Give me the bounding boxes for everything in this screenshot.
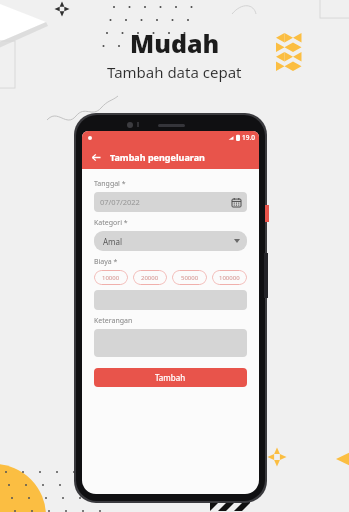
staticText: Tanggal * bbox=[94, 179, 126, 189]
button[interactable]: 100000 bbox=[212, 270, 247, 285]
staticText: Tambah data cepat bbox=[107, 62, 242, 82]
other: Pick date bbox=[232, 198, 241, 207]
button[interactable]: 50000 bbox=[172, 270, 207, 285]
staticText: 50000 bbox=[181, 274, 199, 282]
staticText: 10000 bbox=[102, 274, 120, 282]
staticText: Kategori * bbox=[94, 218, 128, 228]
button[interactable]: 07/07/2022 bbox=[94, 192, 247, 212]
staticText: 20000 bbox=[141, 274, 159, 282]
staticText: Tambah pengeluaran bbox=[110, 151, 205, 163]
button[interactable]: Amal bbox=[94, 231, 247, 251]
button[interactable]: Tambah bbox=[94, 368, 247, 387]
staticText: 19.0 bbox=[242, 133, 255, 142]
button[interactable]: Back bbox=[88, 149, 104, 165]
button[interactable]: 10000 bbox=[94, 270, 128, 285]
staticText: Amal bbox=[103, 236, 123, 247]
staticText: Biaya * bbox=[94, 257, 118, 267]
staticText: 100000 bbox=[219, 274, 240, 282]
staticText: Mudah bbox=[130, 26, 220, 60]
staticText: Keterangan bbox=[94, 316, 133, 326]
staticText: Tambah bbox=[155, 372, 186, 383]
staticText: 07/07/2022 bbox=[100, 197, 140, 207]
button[interactable]: 20000 bbox=[133, 270, 167, 285]
